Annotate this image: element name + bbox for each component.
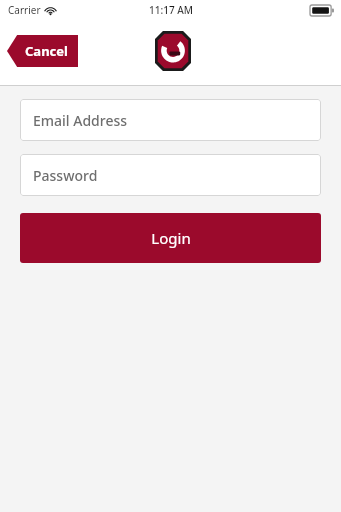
other: Cornell logo: [155, 31, 191, 71]
button[interactable]: Login: [20, 213, 321, 263]
button[interactable]: Password: [20, 154, 321, 196]
staticText: Email Address: [33, 111, 128, 130]
button[interactable]: Cancel: [0, 35, 78, 67]
staticText: Cancel: [25, 42, 68, 60]
staticText: Password: [33, 166, 98, 185]
button[interactable]: Email Address: [20, 99, 321, 141]
staticText: Carrier: [8, 3, 41, 17]
staticText: Login: [151, 228, 191, 248]
staticText: 11:17 AM: [149, 3, 193, 17]
